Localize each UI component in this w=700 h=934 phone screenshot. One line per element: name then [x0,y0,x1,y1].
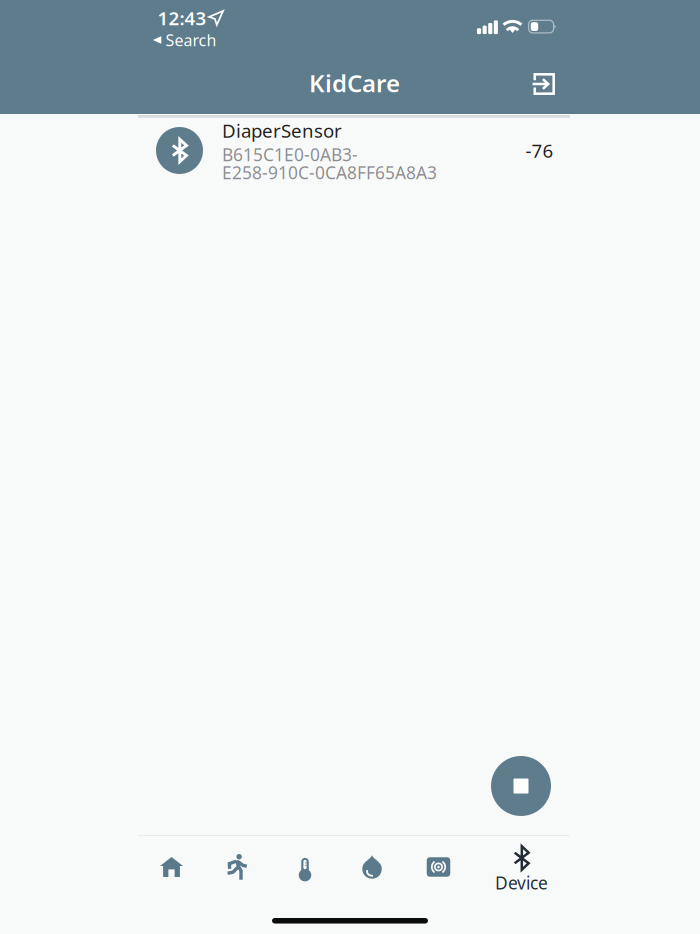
button[interactable]: Log out [522,62,566,106]
staticText: Device [495,871,548,894]
button[interactable]: Home [138,842,204,892]
staticText: DiaperSensor [222,118,342,143]
staticText: B615C1E0-0AB3- [222,143,358,166]
staticText: Search [165,29,216,51]
button[interactable]: Activity [204,842,270,892]
button[interactable]: Humidity [339,842,405,892]
button[interactable]: Device [485,845,557,895]
staticText: E258-910C-0CA8FF65A8A3 [222,161,437,184]
staticText: -76 [525,138,553,163]
staticText: KidCare [309,67,400,99]
button[interactable]: Sensor [405,842,471,892]
button[interactable]: Stop scanning [491,756,551,816]
staticText: 12:43 [157,5,206,30]
button[interactable]: Temperature [272,842,338,892]
button[interactable]: DiaperSensor [138,118,570,188]
button[interactable]: Search [153,33,216,47]
